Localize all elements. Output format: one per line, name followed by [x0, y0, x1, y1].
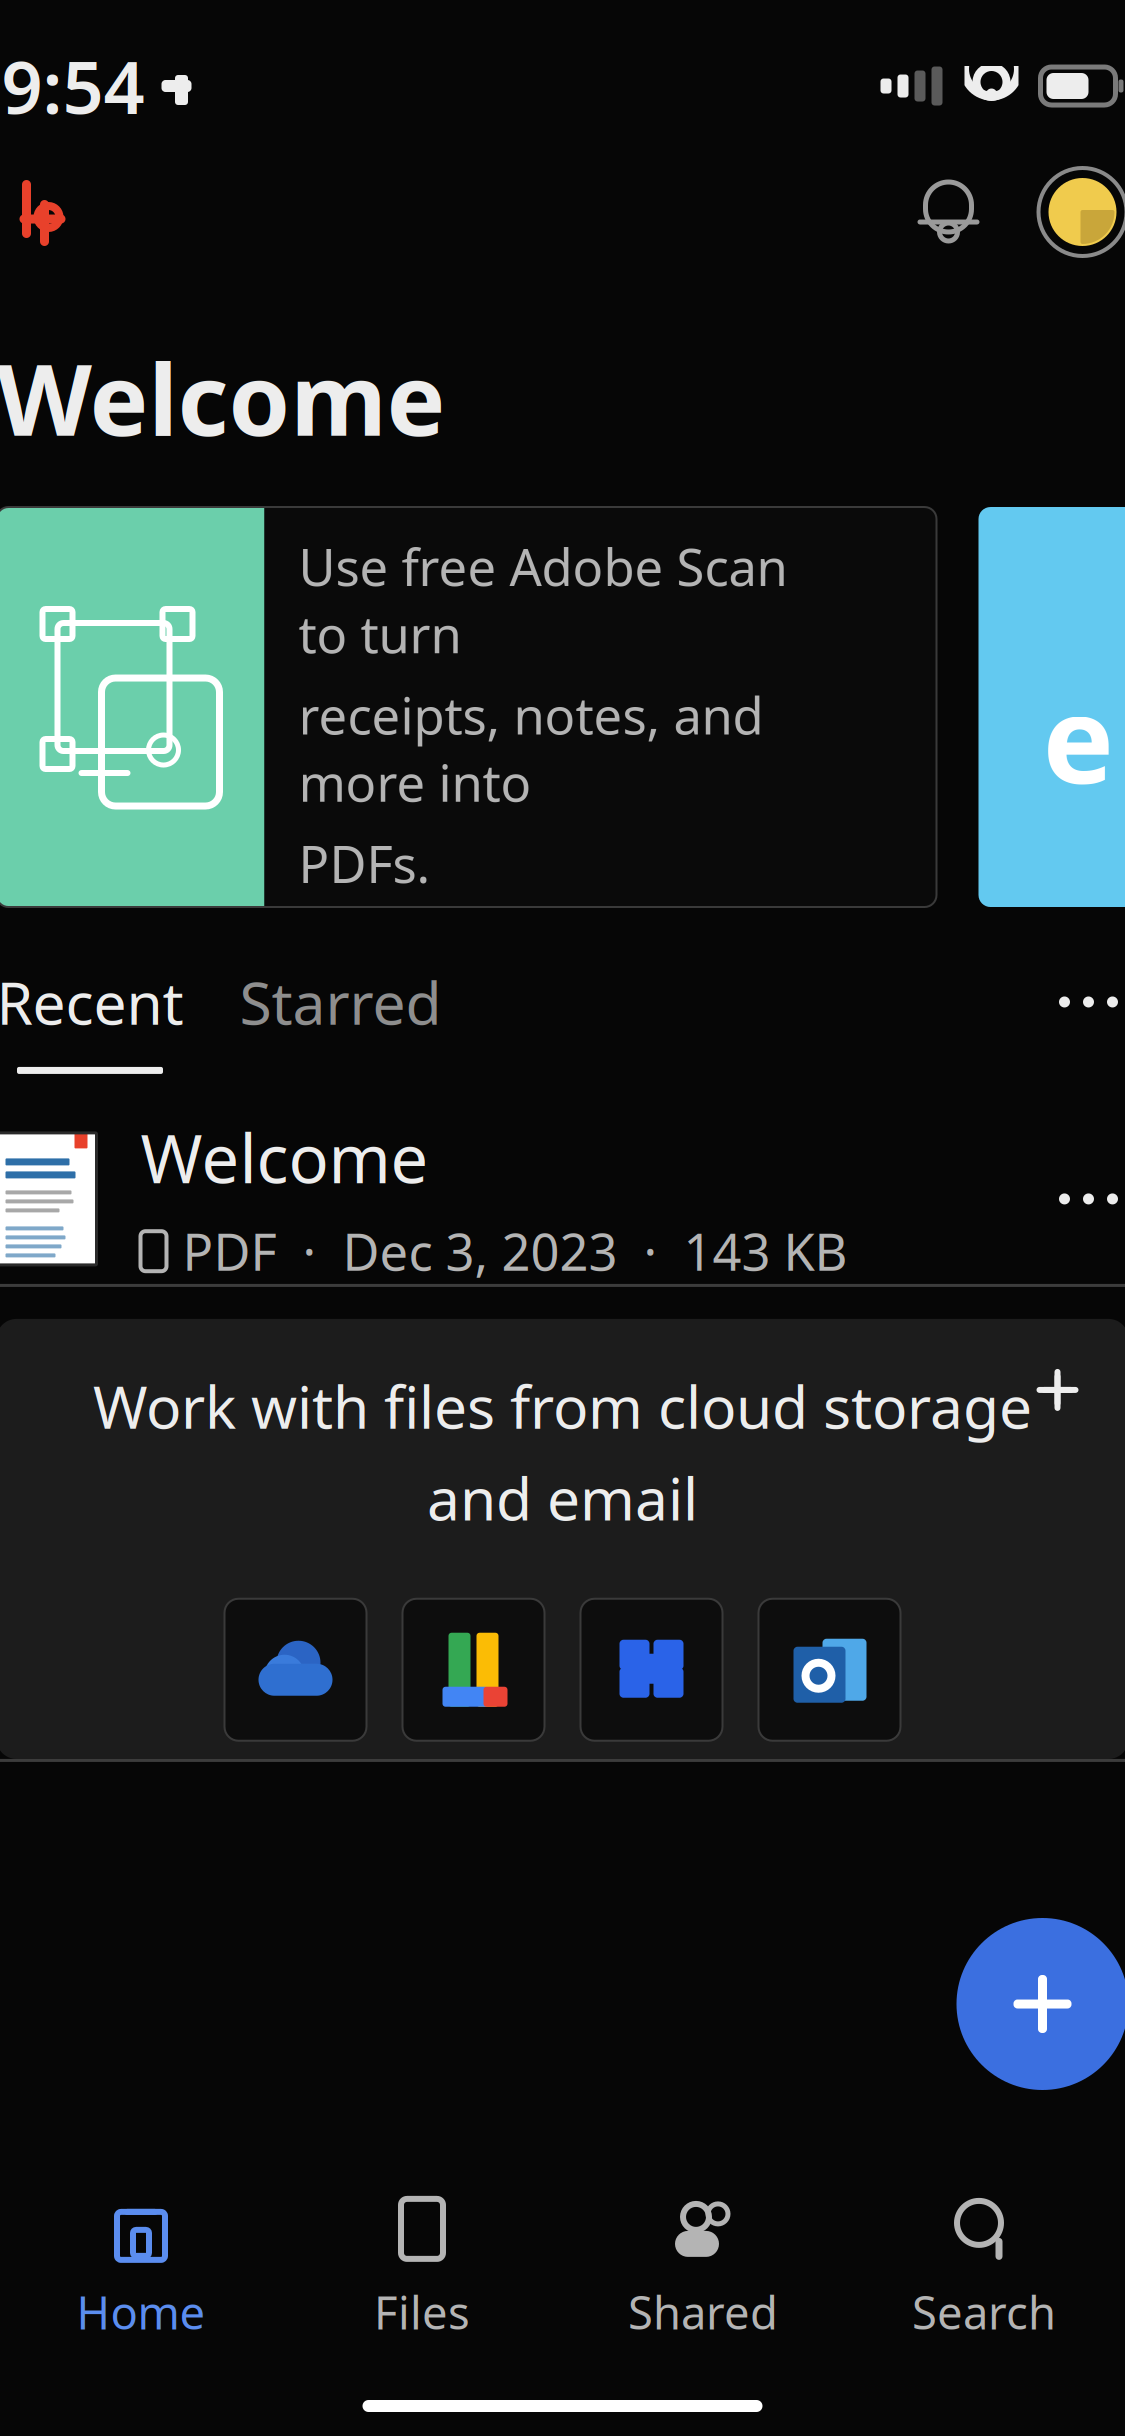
staticText: Scan to PDF: [298, 438, 624, 513]
button[interactable]: Welcome: [0, 1114, 1125, 1284]
staticText: Files: [374, 2282, 470, 2342]
button[interactable]: Shared: [562, 2192, 843, 2342]
button[interactable]: Next promotion: [978, 507, 1125, 907]
button[interactable]: Search: [843, 2192, 1124, 2342]
staticText: Search: [912, 2282, 1056, 2342]
staticText: Use free Adobe Scan to turn: [298, 533, 787, 667]
button[interactable]: Scan to PDF: [0, 507, 936, 907]
staticText: e: [1042, 657, 1114, 817]
button[interactable]: Adobe Acrobat: [0, 172, 70, 252]
staticText: Welcome: [0, 332, 445, 463]
button[interactable]: Create: [956, 1918, 1125, 2090]
button[interactable]: Account: [1036, 166, 1125, 258]
button[interactable]: Home: [0, 2192, 281, 2342]
button[interactable]: Notifications: [906, 170, 990, 254]
button[interactable]: Cloud service: [402, 1599, 544, 1741]
staticText: Starred: [239, 963, 441, 1041]
button[interactable]: Cloud service: [758, 1599, 900, 1741]
button[interactable]: Cloud service: [580, 1599, 722, 1741]
staticText: Shared: [628, 2282, 778, 2342]
button[interactable]: More options: [1048, 972, 1125, 1065]
staticText: Home: [76, 2282, 205, 2342]
staticText: PDF · Dec 3, 2023 · 143 KB: [182, 1218, 847, 1285]
button[interactable]: Cloud service: [224, 1599, 366, 1741]
button[interactable]: Recent: [0, 963, 183, 1074]
staticText: receipts, notes, and more into: [298, 681, 763, 816]
staticText: and email: [427, 1459, 698, 1537]
staticText: Recent: [0, 963, 183, 1041]
button[interactable]: Starred: [239, 963, 441, 1074]
staticText: 9:54: [1, 38, 144, 134]
button[interactable]: Dismiss cloud storage: [1022, 1355, 1092, 1425]
staticText: Work with files from cloud storage: [93, 1367, 1032, 1445]
staticText: Welcome: [140, 1113, 428, 1201]
button[interactable]: Files: [281, 2192, 562, 2342]
staticText: Get app: [699, 905, 902, 976]
staticText: PDFs.: [298, 830, 430, 897]
